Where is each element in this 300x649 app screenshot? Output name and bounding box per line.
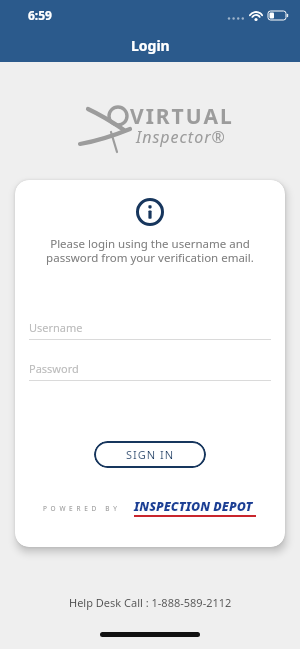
staticText: Inspector® [136,126,226,148]
staticText: VIRTUAL [130,102,234,131]
staticText: Username [29,320,83,335]
staticText: Login [131,36,170,55]
button[interactable]: Password [29,361,271,381]
button[interactable]: SIGN IN [94,441,206,468]
staticText: P O W E R E D B Y [43,504,118,513]
button[interactable]: Username [29,320,271,340]
staticText: 6:59 [28,7,52,23]
staticText: INSPECTION DEPOT [134,498,253,515]
staticText: Please login using the username and pass… [46,236,254,265]
staticText: Password [29,361,79,376]
staticText: SIGN IN [126,447,175,462]
staticText: Help Desk Call : 1-888-589-2112 [69,595,232,610]
